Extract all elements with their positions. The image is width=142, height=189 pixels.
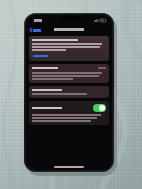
button[interactable]: [29, 64, 109, 83]
button[interactable]: Toggle setting on: [29, 101, 109, 125]
button[interactable]: Back: [29, 26, 42, 34]
button[interactable]: [32, 54, 49, 58]
button[interactable]: [29, 86, 109, 98]
button[interactable]: [29, 36, 109, 61]
button[interactable]: Toggle setting on: [93, 104, 106, 112]
